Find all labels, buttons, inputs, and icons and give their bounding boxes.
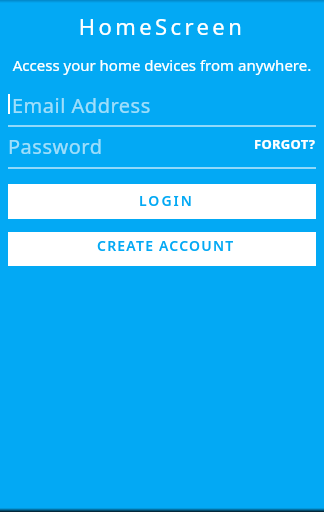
staticText: HomeScreen (0, 11, 324, 41)
button[interactable]: Email Address (8, 91, 316, 127)
button[interactable]: FORGOT? (254, 135, 316, 153)
staticText: Access your home devices from anywhere. (0, 55, 324, 75)
staticText: Password (8, 133, 103, 160)
staticText: Email Address (12, 92, 151, 119)
button[interactable]: CREATE ACCOUNT (8, 232, 316, 266)
staticText: LOGIN (139, 191, 194, 210)
button[interactable]: LOGIN (8, 184, 316, 219)
staticText: CREATE ACCOUNT (97, 236, 235, 255)
button[interactable]: Password (8, 134, 316, 169)
